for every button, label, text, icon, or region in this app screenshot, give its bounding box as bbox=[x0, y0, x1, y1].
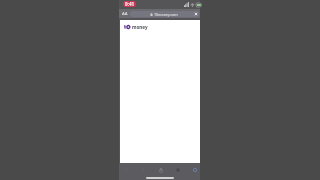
staticText: money bbox=[132, 24, 148, 30]
button[interactable]: 10money.com bbox=[130, 11, 199, 17]
staticText: 10money.com bbox=[154, 12, 178, 17]
button[interactable]: Share bbox=[156, 165, 165, 174]
staticText: 9:41 bbox=[125, 1, 135, 7]
button[interactable]: Bookmarks bbox=[173, 165, 182, 174]
button[interactable]: Page settings bbox=[121, 10, 129, 18]
button[interactable]: Tabs bbox=[190, 165, 199, 174]
button[interactable]: Close bbox=[193, 11, 199, 17]
staticText: AA bbox=[122, 11, 128, 17]
